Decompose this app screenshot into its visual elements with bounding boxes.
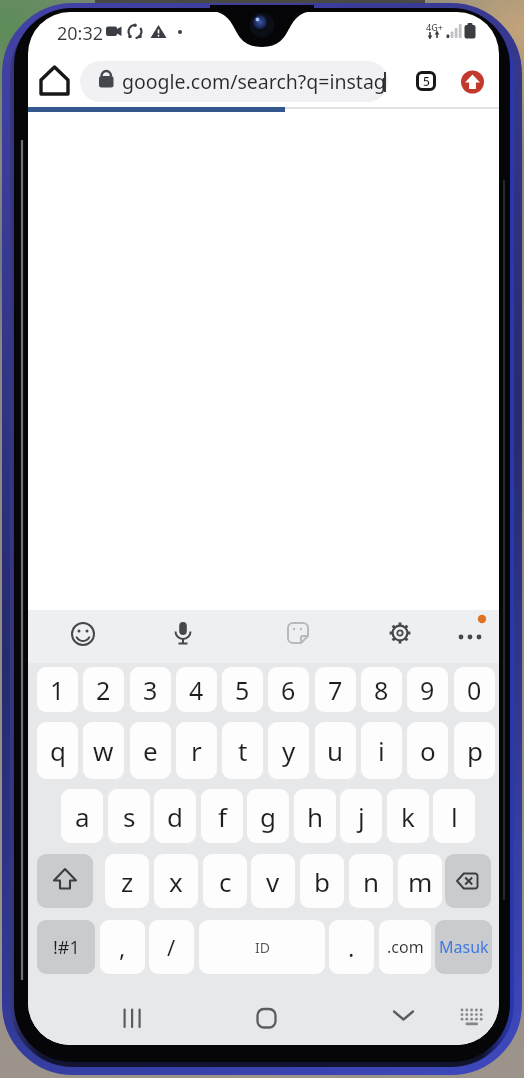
button[interactable] <box>278 614 318 659</box>
button[interactable] <box>36 60 78 102</box>
button[interactable]: .com <box>379 920 431 974</box>
button[interactable]: ID <box>199 920 325 974</box>
staticText: w <box>93 733 114 768</box>
button[interactable]: t <box>222 722 263 779</box>
button[interactable] <box>445 854 491 908</box>
button[interactable]: q <box>37 722 78 779</box>
button[interactable]: 3 <box>130 667 171 712</box>
staticText: x <box>169 864 183 899</box>
button[interactable] <box>163 614 203 659</box>
staticText: o <box>420 733 436 768</box>
staticText: 3 <box>143 673 158 707</box>
button[interactable]: 1 <box>37 667 78 712</box>
button[interactable]: d <box>154 789 196 843</box>
button[interactable]: i <box>361 722 402 779</box>
button[interactable] <box>37 854 93 908</box>
button[interactable]: c <box>203 854 247 908</box>
staticText: , <box>119 931 126 964</box>
button[interactable] <box>452 1000 492 1038</box>
button[interactable]: 5 <box>222 667 263 712</box>
staticText: q <box>50 733 66 768</box>
staticText: l <box>451 799 458 834</box>
staticText: h <box>307 799 324 834</box>
staticText: 7 <box>328 673 343 707</box>
button[interactable] <box>244 1000 288 1038</box>
button[interactable]: !#1 <box>37 920 95 974</box>
button[interactable]: 5 <box>416 71 436 91</box>
staticText: f <box>218 799 227 834</box>
staticText: 6 <box>281 673 296 707</box>
staticText: u <box>327 733 344 768</box>
staticText: a <box>75 799 90 834</box>
button[interactable]: k <box>387 789 429 843</box>
button[interactable] <box>80 61 388 102</box>
staticText: 5 <box>235 673 250 707</box>
button[interactable]: l <box>433 789 475 843</box>
staticText: d <box>167 799 183 834</box>
button[interactable]: m <box>398 854 442 908</box>
staticText: n <box>363 864 380 899</box>
button[interactable]: / <box>149 920 194 974</box>
button[interactable]: 4 <box>176 667 217 712</box>
staticText: b <box>314 864 330 899</box>
staticText: r <box>191 733 202 768</box>
staticText: / <box>167 932 176 962</box>
button[interactable]: p <box>454 722 495 779</box>
button[interactable]: j <box>340 789 382 843</box>
staticText: c <box>219 864 232 899</box>
button[interactable]: f <box>201 789 243 843</box>
button[interactable]: z <box>105 854 149 908</box>
button[interactable]: , <box>100 920 145 974</box>
staticText: s <box>123 799 136 834</box>
button[interactable]: n <box>349 854 393 908</box>
button[interactable]: h <box>294 789 336 843</box>
button[interactable]: g <box>247 789 289 843</box>
button[interactable]: e <box>130 722 171 779</box>
staticText: . <box>348 931 355 964</box>
staticText: 1 <box>50 673 65 707</box>
button[interactable]: 9 <box>407 667 448 712</box>
button[interactable] <box>448 614 492 659</box>
button[interactable]: Masuk <box>435 920 492 974</box>
staticText: t <box>238 733 248 768</box>
staticText: 2 <box>96 673 111 707</box>
staticText: google.com/search?q=instag <box>122 68 386 95</box>
button[interactable]: u <box>315 722 356 779</box>
button[interactable]: x <box>154 854 198 908</box>
button[interactable]: w <box>83 722 124 779</box>
staticText: 4 <box>189 673 204 707</box>
button[interactable]: s <box>108 789 150 843</box>
button[interactable]: b <box>300 854 344 908</box>
button[interactable]: y <box>268 722 309 779</box>
staticText: p <box>467 733 483 768</box>
staticText: 20:32 <box>57 21 104 41</box>
button[interactable]: . <box>329 920 374 974</box>
button[interactable]: 7 <box>315 667 356 712</box>
staticText: g <box>260 799 276 834</box>
button[interactable]: 0 <box>454 667 495 712</box>
staticText: .com <box>387 936 424 958</box>
button[interactable]: 6 <box>268 667 309 712</box>
staticText: 8 <box>374 673 389 707</box>
button[interactable]: r <box>176 722 217 779</box>
button[interactable]: 8 <box>361 667 402 712</box>
staticText: 9 <box>420 673 435 707</box>
button[interactable] <box>63 614 103 659</box>
button[interactable]: 2 <box>83 667 124 712</box>
staticText: k <box>401 799 415 834</box>
staticText: i <box>378 733 385 768</box>
button[interactable] <box>456 66 488 98</box>
staticText: y <box>282 733 296 768</box>
staticText: !#1 <box>53 935 80 960</box>
button[interactable]: v <box>251 854 295 908</box>
button[interactable]: o <box>407 722 448 779</box>
staticText: 4G+ <box>426 21 443 32</box>
staticText: ID <box>255 938 270 957</box>
button[interactable] <box>380 614 420 659</box>
staticText: 5 <box>423 73 430 89</box>
button[interactable] <box>381 1000 425 1038</box>
staticText: z <box>121 864 134 899</box>
button[interactable]: a <box>61 789 103 843</box>
button[interactable] <box>116 1000 160 1038</box>
staticText: e <box>143 733 158 768</box>
